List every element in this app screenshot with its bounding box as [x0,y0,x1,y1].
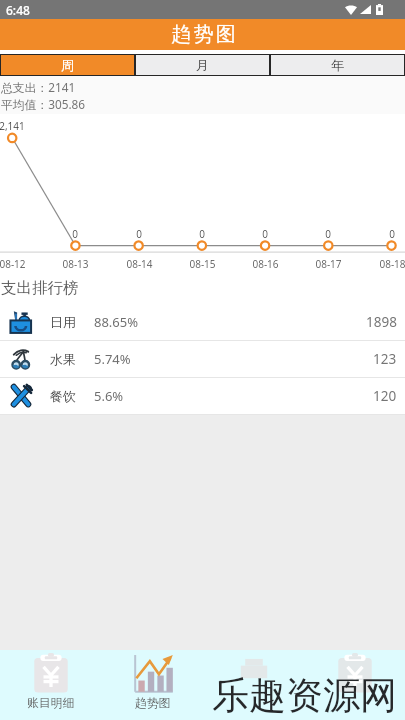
staticText: 0 [136,227,142,241]
staticText: 支出排行榜 [1,278,79,298]
staticText: 趋势图 [135,696,171,711]
button[interactable]: 账目明细 [0,650,102,720]
staticText: 水果 [50,351,76,367]
staticText: 6:48 [6,2,30,18]
staticText: 年 [331,57,344,73]
staticText: 乐趣资源网 [212,672,397,719]
staticText: 08-12 [0,257,26,271]
staticText: 日用 [50,314,76,330]
button[interactable]: 趋势图 [102,650,203,720]
staticText: 0 [199,227,205,241]
staticText: 趋势图 [171,22,239,47]
staticText: 08-18 [379,257,405,271]
staticText: 123 [373,350,397,368]
staticText: 0 [389,227,395,241]
staticText: 08-13 [62,257,89,271]
staticText: 08-15 [189,257,216,271]
staticText: 5.6% [94,387,124,405]
staticText: 88.65% [94,313,139,331]
staticText: 2,141 [0,119,25,133]
staticText: 1898 [366,313,397,331]
staticText: 总支出：2141 [1,79,76,95]
button[interactable]: 年 [270,54,405,76]
button[interactable]: tab [203,650,304,720]
button[interactable]: 水果 [0,341,405,377]
staticText: 账目明细 [27,696,75,711]
staticText: 0 [325,227,331,241]
staticText: 0 [72,227,78,241]
staticText: 餐饮 [50,388,76,404]
staticText: 月 [196,57,209,73]
staticText: 5.74% [94,350,131,368]
staticText: 平均值：305.86 [1,96,86,112]
staticText: 周 [61,57,74,73]
button[interactable]: tab [304,650,405,720]
staticText: 08-16 [252,257,279,271]
button[interactable]: 周 [0,54,135,76]
button[interactable]: 月 [135,54,270,76]
staticText: 120 [373,387,397,405]
button[interactable]: 日用 [0,304,405,340]
staticText: 0 [262,227,268,241]
staticText: 08-17 [315,257,342,271]
staticText: 08-14 [126,257,153,271]
button[interactable]: 餐饮 [0,378,405,414]
